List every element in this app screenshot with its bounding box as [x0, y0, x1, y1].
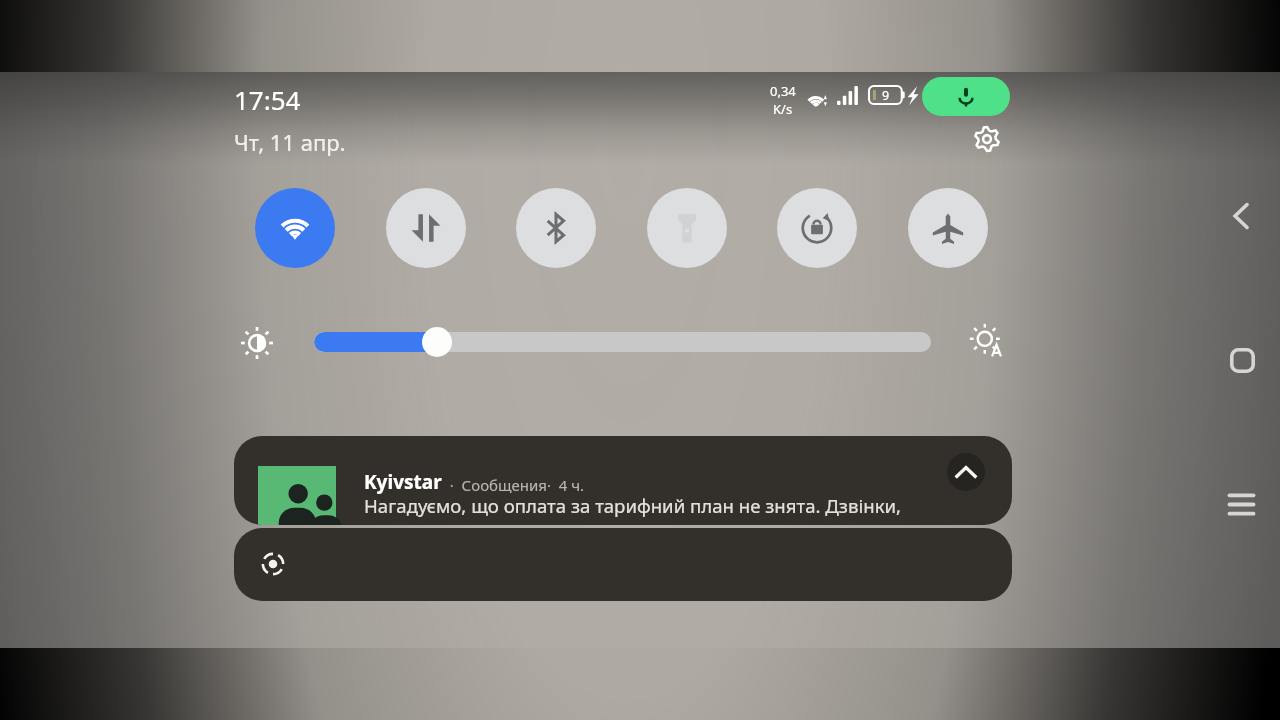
button[interactable]: Settings: [967, 119, 1007, 159]
other: Sensors: [260, 551, 286, 577]
button[interactable]: Sensors: [234, 528, 1012, 601]
button[interactable]: Airplane mode: [908, 188, 988, 268]
button[interactable]: Mobile data: [386, 188, 466, 268]
button[interactable]: Home: [1218, 336, 1266, 384]
staticText: 9: [882, 87, 890, 104]
button[interactable]: Brightness: [314, 332, 931, 352]
button[interactable]: Collapse notification: [947, 453, 985, 491]
staticText: 17:54: [234, 82, 301, 117]
button[interactable]: Back: [1217, 192, 1265, 240]
button[interactable]: Flashlight: [647, 188, 727, 268]
button[interactable]: Wi-Fi: [255, 188, 335, 268]
staticText: · Сообщения· 4 ч.: [442, 475, 585, 495]
button[interactable]: Kyivstar: [234, 436, 1012, 525]
button[interactable]: Recents: [1217, 480, 1265, 528]
staticText: Kyivstar: [364, 469, 442, 495]
button[interactable]: Bluetooth: [516, 188, 596, 268]
button[interactable]: Microphone: [922, 77, 1010, 116]
staticText: Чт, 11 апр.: [234, 127, 346, 157]
staticText: Нагадуємо, що оплата за тарифний план не…: [364, 493, 902, 518]
button[interactable]: Auto rotate: [777, 188, 857, 268]
staticText: K/s: [773, 100, 793, 118]
staticText: 0,34: [770, 82, 796, 100]
